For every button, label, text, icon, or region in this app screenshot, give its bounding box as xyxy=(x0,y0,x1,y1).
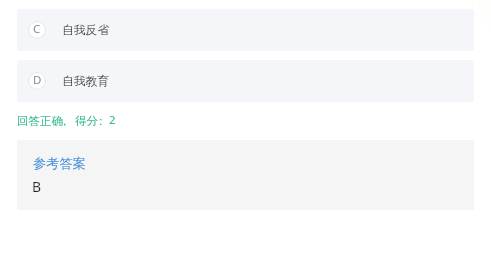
staticText: 自我教育 xyxy=(62,74,110,89)
staticText: 得分 xyxy=(75,114,98,128)
staticText: D xyxy=(33,72,42,88)
staticText: 自我反省 xyxy=(62,23,110,38)
staticText: 2 xyxy=(109,112,116,128)
staticText: ， xyxy=(59,114,71,128)
staticText: B xyxy=(32,177,42,196)
staticText: ： xyxy=(95,114,106,128)
staticText: 参考答案 xyxy=(33,155,86,172)
button[interactable]: D xyxy=(17,60,474,102)
button[interactable]: C xyxy=(17,9,474,51)
staticText: 回答正确 xyxy=(17,114,63,128)
staticText: C xyxy=(33,21,41,37)
